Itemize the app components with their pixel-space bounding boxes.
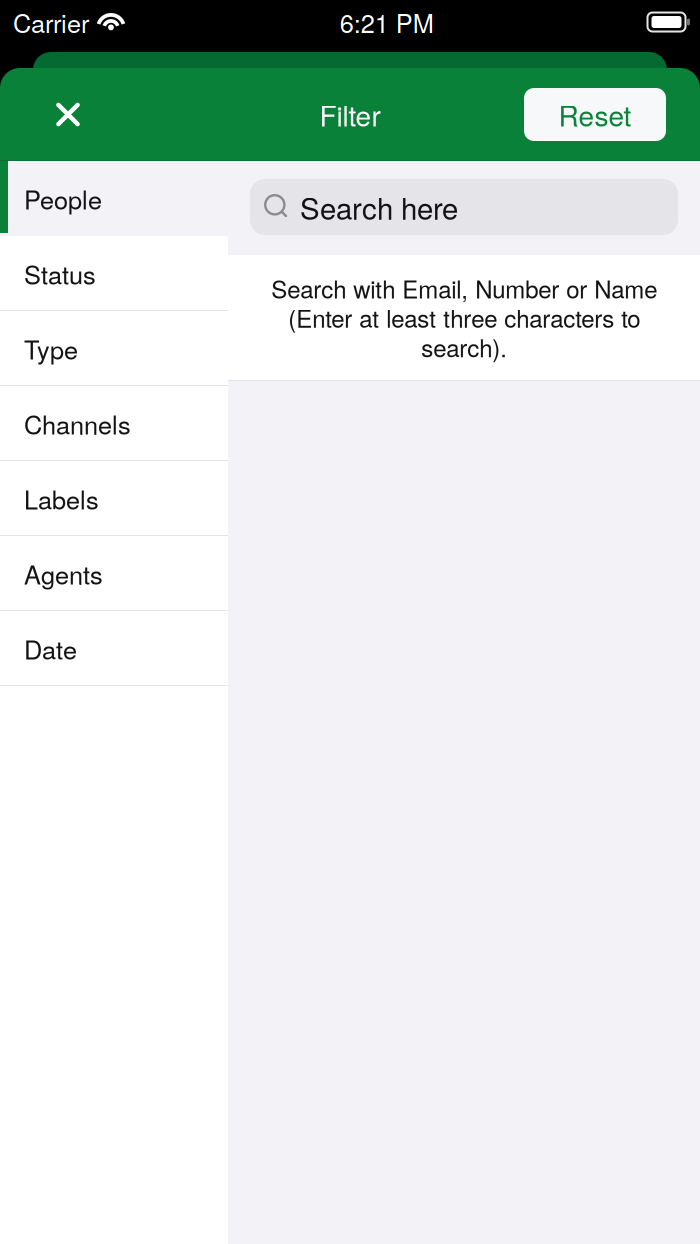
staticText: (Enter at least three characters to [288, 300, 640, 335]
staticText: Search here [300, 186, 458, 228]
staticText: Filter [319, 94, 380, 135]
button[interactable]: Search here [250, 179, 678, 235]
staticText: Channels [24, 405, 131, 442]
staticText: Reset [558, 94, 631, 135]
staticText: 6:21 PM [340, 4, 434, 40]
button[interactable]: Reset [524, 88, 666, 141]
staticText: Agents [24, 555, 103, 592]
button[interactable]: People [0, 161, 228, 236]
button[interactable]: Channels [0, 386, 228, 461]
button[interactable]: Status [0, 236, 228, 311]
button[interactable]: Close [40, 84, 96, 144]
button[interactable]: Agents [0, 536, 228, 611]
button[interactable]: Labels [0, 461, 228, 536]
staticText: Carrier [13, 4, 89, 40]
button[interactable]: Date [0, 611, 228, 686]
staticText: search). [421, 330, 507, 364]
staticText: Labels [24, 480, 99, 517]
staticText: Search with Email, Number or Name [271, 271, 657, 305]
staticText: Type [24, 330, 78, 367]
button[interactable]: Type [0, 311, 228, 386]
staticText: Status [24, 255, 96, 292]
staticText: People [24, 180, 102, 217]
staticText: Date [24, 630, 77, 667]
